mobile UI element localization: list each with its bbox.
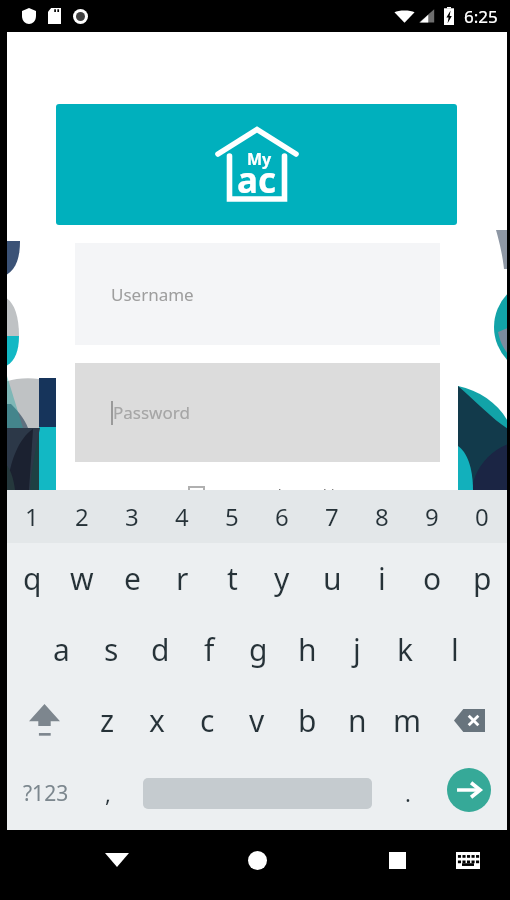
staticText: f: [204, 629, 215, 670]
button[interactable]: p: [457, 543, 507, 614]
button[interactable]: Back: [93, 830, 141, 890]
staticText: e: [124, 558, 141, 599]
button[interactable]: 7: [307, 490, 357, 543]
staticText: Password: [113, 401, 190, 424]
staticText: o: [423, 558, 442, 599]
button[interactable]: Username: [75, 243, 440, 345]
button[interactable]: b: [282, 685, 332, 756]
staticText: My: [247, 148, 272, 170]
staticText: u: [323, 558, 342, 599]
staticText: z: [100, 700, 115, 741]
button[interactable]: x: [132, 685, 182, 756]
staticText: 7: [325, 500, 339, 533]
staticText: ?123: [23, 779, 69, 808]
button[interactable]: 6: [257, 490, 307, 543]
staticText: d: [151, 629, 170, 670]
button[interactable]: d: [136, 614, 185, 685]
button[interactable]: o: [407, 543, 457, 614]
staticText: 1: [25, 500, 39, 533]
staticText: y: [274, 558, 290, 599]
staticText: .: [405, 778, 411, 808]
button[interactable]: y: [257, 543, 307, 614]
button[interactable]: ?123: [7, 756, 85, 830]
button[interactable]: z: [82, 685, 132, 756]
button[interactable]: g: [234, 614, 283, 685]
staticText: 0: [475, 500, 489, 533]
staticText: n: [348, 700, 367, 741]
staticText: 6: [275, 500, 289, 533]
button[interactable]: Keep me logged in: [189, 484, 344, 504]
staticText: g: [249, 629, 268, 670]
staticText: ,: [105, 778, 111, 808]
button[interactable]: l: [430, 614, 479, 685]
staticText: 2: [75, 500, 89, 533]
button[interactable]: .: [385, 756, 430, 830]
staticText: s: [104, 629, 119, 670]
button[interactable]: j: [332, 614, 381, 685]
staticText: l: [451, 629, 459, 670]
staticText: k: [397, 629, 414, 670]
button[interactable]: u: [307, 543, 357, 614]
button[interactable]: ,: [85, 756, 130, 830]
button[interactable]: Shift: [7, 685, 82, 756]
staticText: 6:25: [464, 5, 498, 28]
button[interactable]: Enter: [430, 756, 507, 830]
staticText: j: [353, 629, 361, 670]
staticText: b: [298, 700, 317, 741]
staticText: x: [149, 700, 165, 741]
staticText: 3: [125, 500, 139, 533]
staticText: ac: [237, 156, 277, 204]
button[interactable]: Home: [233, 830, 281, 890]
button[interactable]: i: [357, 543, 407, 614]
staticText: a: [53, 629, 70, 670]
button[interactable]: 9: [407, 490, 457, 543]
button[interactable]: v: [232, 685, 282, 756]
button[interactable]: w: [57, 543, 107, 614]
button[interactable]: 1: [7, 490, 57, 543]
staticText: 5: [225, 500, 239, 533]
staticText: w: [70, 558, 94, 599]
button[interactable]: q: [7, 543, 57, 614]
button[interactable]: 0: [457, 490, 507, 543]
button[interactable]: a: [36, 614, 86, 685]
button[interactable]: s: [86, 614, 136, 685]
staticText: i: [378, 558, 386, 599]
staticText: 9: [425, 500, 439, 533]
button[interactable]: 5: [207, 490, 257, 543]
button[interactable]: t: [207, 543, 257, 614]
button[interactable]: Backspace: [432, 685, 507, 756]
button[interactable]: c: [182, 685, 232, 756]
staticText: h: [298, 629, 317, 670]
staticText: q: [23, 558, 42, 599]
button[interactable]: h: [283, 614, 332, 685]
button[interactable]: k: [381, 614, 430, 685]
button[interactable]: n: [332, 685, 382, 756]
button[interactable]: m: [382, 685, 432, 756]
button[interactable]: Recent apps: [373, 830, 421, 890]
button[interactable]: Space: [130, 756, 385, 830]
staticText: r: [176, 558, 189, 599]
button[interactable]: 4: [157, 490, 207, 543]
button[interactable]: f: [185, 614, 234, 685]
staticText: v: [249, 700, 265, 741]
button[interactable]: 2: [57, 490, 107, 543]
button[interactable]: 3: [107, 490, 157, 543]
staticText: 4: [175, 500, 189, 533]
staticText: Keep me logged in: [212, 484, 344, 504]
staticText: t: [227, 558, 238, 599]
button[interactable]: r: [157, 543, 207, 614]
staticText: Username: [111, 283, 194, 306]
button[interactable]: 8: [357, 490, 407, 543]
button[interactable]: e: [107, 543, 157, 614]
staticText: p: [473, 558, 492, 599]
button[interactable]: Password: [75, 363, 440, 462]
staticText: c: [200, 700, 215, 741]
button[interactable]: Change keyboard: [444, 830, 492, 890]
staticText: 8: [375, 500, 389, 533]
staticText: m: [393, 700, 422, 741]
